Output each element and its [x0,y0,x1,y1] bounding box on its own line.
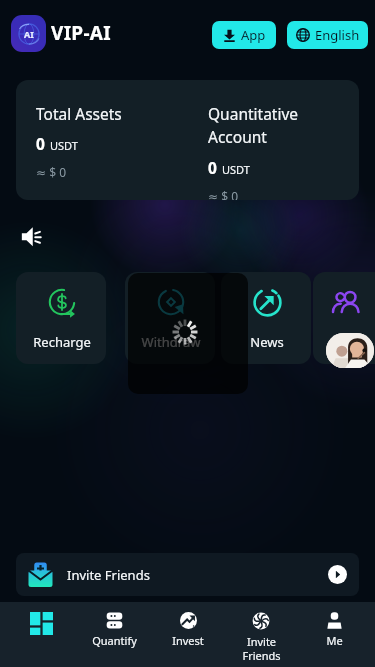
staticText: English [315,26,360,44]
staticText: USDT [50,138,78,153]
button[interactable]: News [221,272,311,364]
staticText: App [241,26,266,44]
staticText: News [222,333,311,351]
button[interactable]: Customer service [313,272,375,364]
staticText: AI [24,28,34,40]
staticText: ≈ $ 0 [36,164,67,180]
button[interactable]: Quantify [77,602,151,667]
staticText: Recharge [17,333,106,351]
staticText: Withdraw [126,333,215,351]
staticText: 0 [36,133,45,154]
staticText: Quantitative Account [208,103,318,148]
button[interactable]: Home [4,602,78,667]
staticText: 0 [208,157,217,178]
button[interactable]: Me [297,602,371,667]
staticText: Invite Friends [67,566,150,584]
staticText: Quantify [92,633,137,648]
button[interactable]: English [287,21,368,49]
button[interactable]: Announcements [19,224,44,249]
button[interactable]: Withdraw [125,272,215,364]
button[interactable]: Total Assets [16,80,359,200]
staticText: ≈ $ 0 [208,188,239,200]
button[interactable]: Recharge [16,272,106,364]
staticText: Invest [172,633,204,648]
button[interactable]: Invite Friends [16,553,359,596]
button[interactable]: Invest [151,602,225,667]
button[interactable]: App [212,21,276,49]
button[interactable]: Invite Friends [224,602,298,667]
staticText: USDT [222,162,250,177]
staticText: Invite Friends [242,634,281,663]
staticText: Me [326,633,343,648]
staticText: VIP-AI [51,20,111,46]
staticText: Total Assets [36,103,122,124]
button[interactable]: VIP-AI logo [11,15,46,52]
